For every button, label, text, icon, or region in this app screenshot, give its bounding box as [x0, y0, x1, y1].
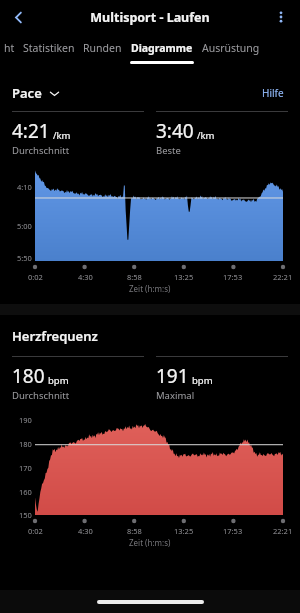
staticText: bpm [192, 374, 213, 387]
button[interactable]: Diagramme [130, 34, 194, 64]
staticText: Multisport - Laufen [90, 9, 210, 26]
staticText: 17:53 [223, 272, 243, 282]
staticText: 191 [156, 363, 189, 389]
staticText: 4:10 [17, 182, 32, 192]
staticText: 170 [19, 463, 32, 473]
staticText: Diagramme [131, 41, 193, 55]
staticText: 4:21 [12, 118, 50, 144]
staticText: Ausrüstung [202, 41, 260, 55]
staticText: 4:30 [78, 526, 93, 536]
staticText: 8:58 [127, 526, 142, 536]
staticText: 3:40 [156, 118, 194, 144]
button[interactable]: 3:40 [156, 118, 288, 157]
button[interactable]: Runden [83, 34, 122, 64]
button[interactable]: Ausrüstung [202, 34, 260, 64]
button[interactable]: 4:21 [12, 118, 144, 157]
staticText: Maximal [156, 389, 195, 402]
staticText: Pace [12, 84, 42, 102]
staticText: 190 [19, 415, 32, 425]
staticText: Zeit (h:m:s) [129, 283, 171, 294]
staticText: 180 [12, 363, 45, 389]
staticText: ht [4, 41, 15, 55]
button[interactable]: More options [267, 3, 295, 31]
staticText: 8:58 [127, 272, 142, 282]
staticText: 22:21 [273, 272, 293, 282]
staticText: 0:02 [28, 272, 43, 282]
staticText: Durchschnitt [12, 389, 70, 402]
button[interactable]: Hilfe [262, 86, 284, 100]
staticText: Statistiken [23, 41, 75, 55]
staticText: 13:25 [174, 526, 194, 536]
button[interactable]: Pace [12, 84, 60, 102]
staticText: /km [197, 129, 215, 142]
staticText: 13:25 [174, 272, 194, 282]
staticText: 17:53 [223, 526, 243, 536]
staticText: 150 [19, 510, 32, 520]
staticText: Herzfrequenz [12, 327, 98, 345]
staticText: Beste [156, 144, 181, 157]
staticText: Zeit (h:m:s) [129, 537, 171, 548]
button[interactable]: Statistiken [23, 34, 75, 64]
staticText: 160 [19, 487, 32, 497]
staticText: 22:21 [273, 526, 293, 536]
staticText: 5:00 [17, 221, 32, 231]
button[interactable]: ht [4, 34, 15, 64]
staticText: /km [53, 129, 71, 142]
button[interactable]: 191 [156, 363, 288, 402]
button[interactable]: 180 [12, 363, 144, 402]
staticText: 180 [19, 439, 32, 449]
staticText: 0:02 [28, 526, 43, 536]
staticText: Runden [83, 41, 122, 55]
staticText: bpm [48, 374, 69, 387]
button[interactable]: Back [3, 2, 33, 32]
staticText: 5:50 [17, 253, 32, 263]
staticText: Durchschnitt [12, 144, 70, 157]
staticText: 4:30 [78, 272, 93, 282]
staticText: Hilfe [262, 86, 284, 100]
